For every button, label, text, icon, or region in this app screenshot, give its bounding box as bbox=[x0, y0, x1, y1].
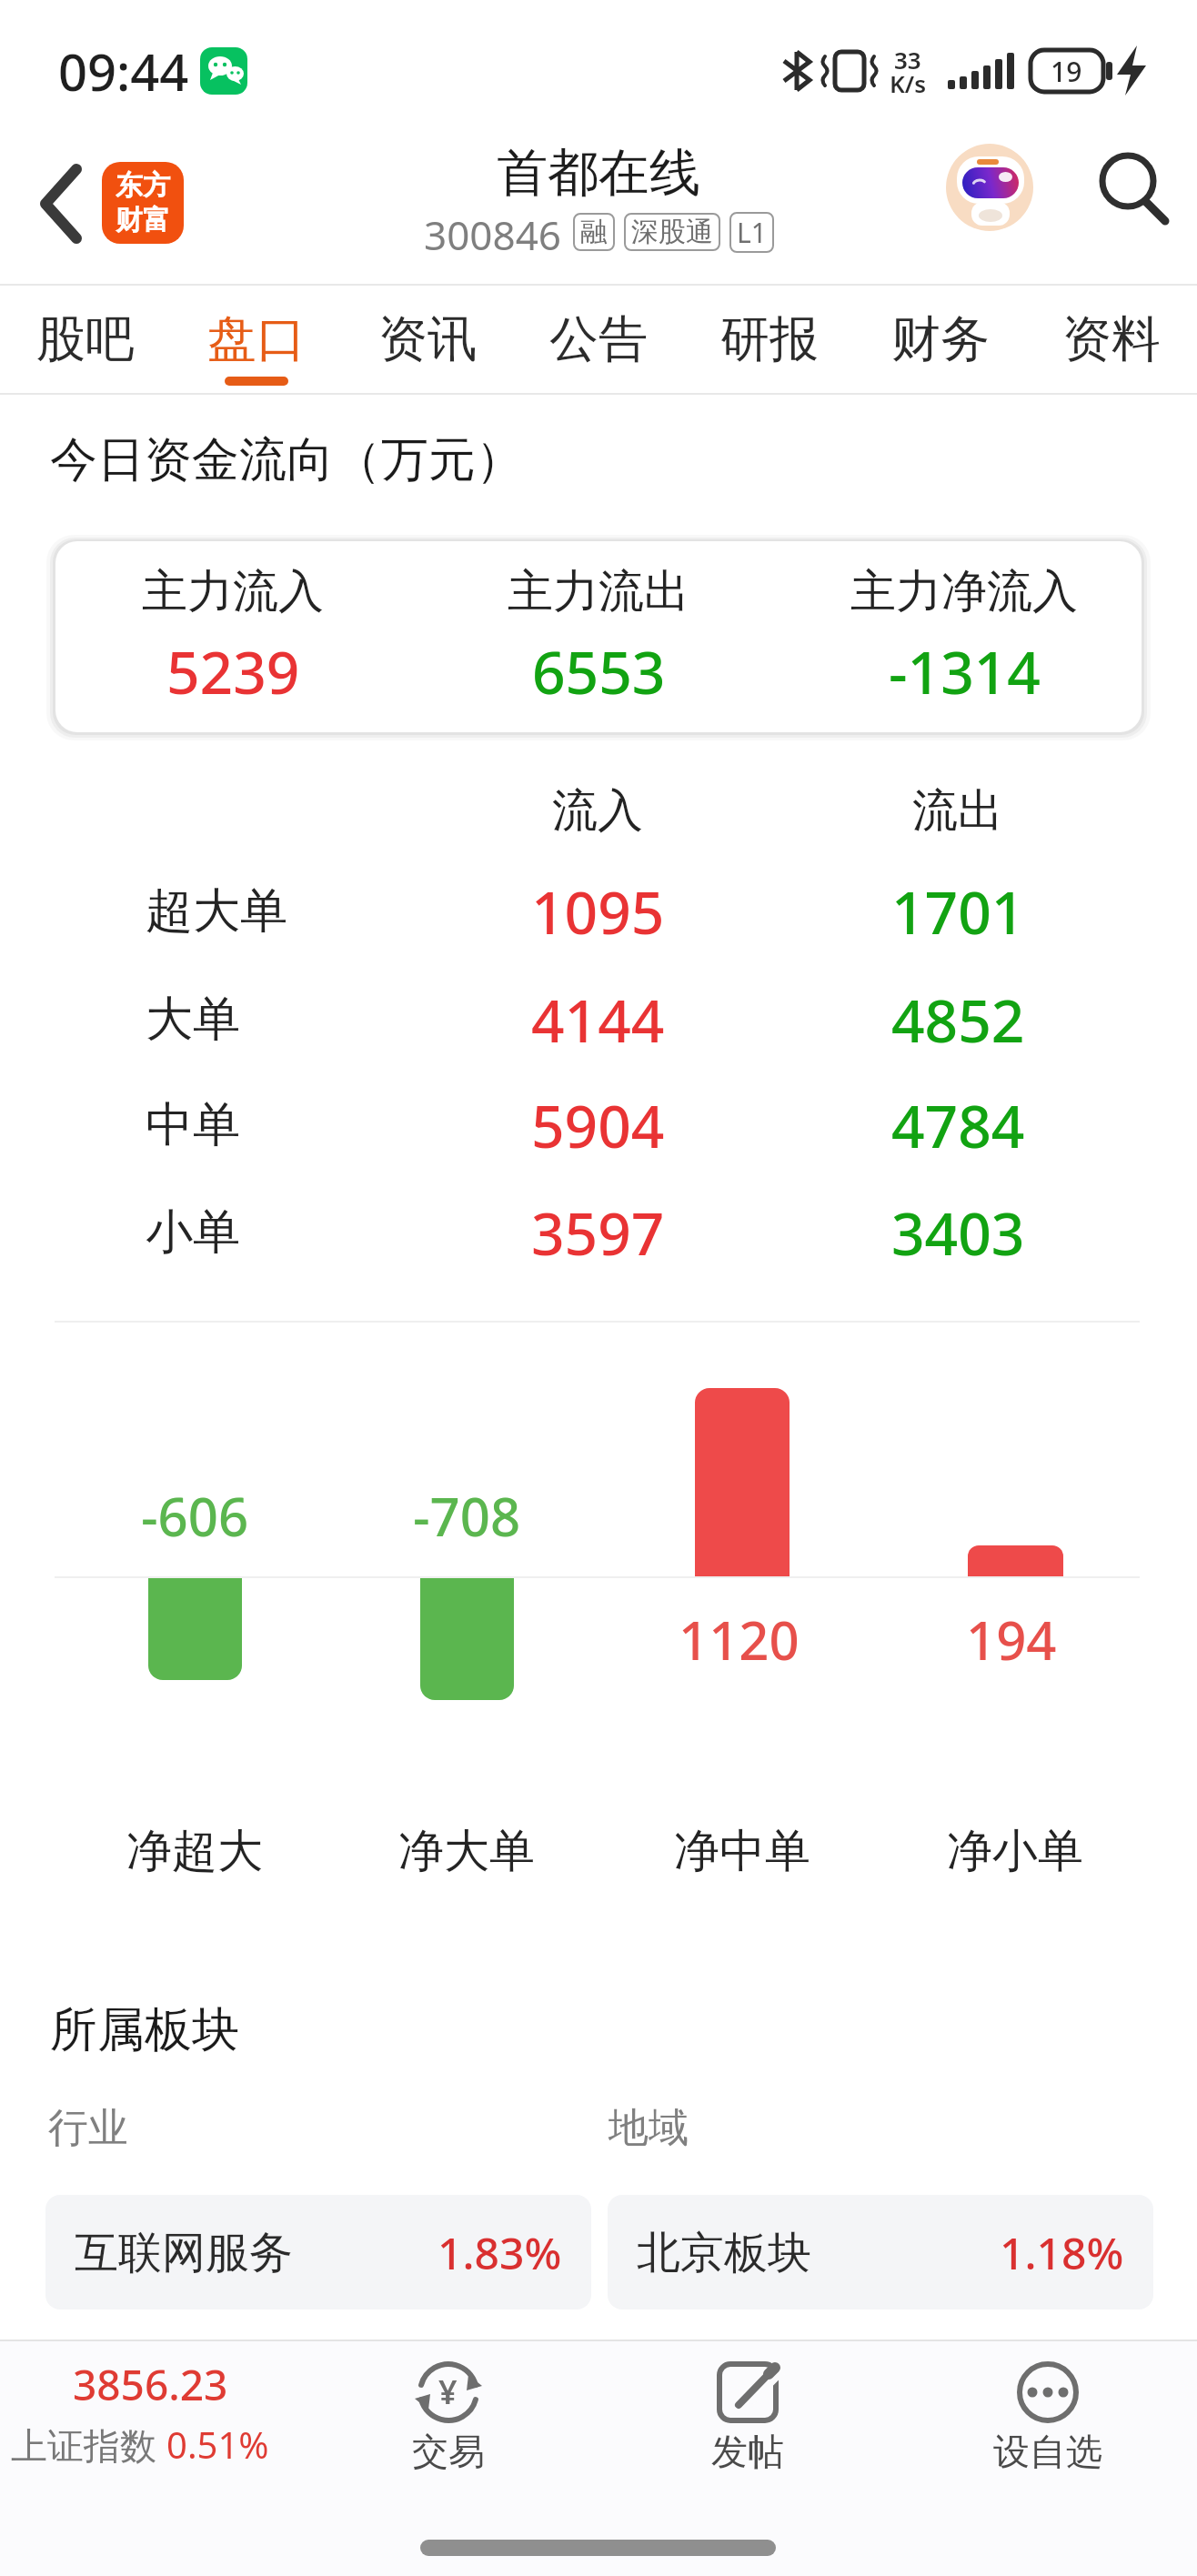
staticText: 资料 bbox=[1062, 308, 1161, 370]
staticText: 1701 bbox=[891, 872, 1025, 951]
staticText: 5904 bbox=[531, 1086, 665, 1165]
staticText: 4784 bbox=[891, 1086, 1025, 1165]
staticText: 1.83% bbox=[438, 2223, 562, 2282]
staticText: 公告 bbox=[549, 308, 648, 370]
staticText: 今日资金流向（万元） bbox=[50, 430, 523, 490]
staticText: L1 bbox=[737, 214, 767, 251]
staticText: 东方 bbox=[116, 168, 170, 203]
staticText: 设自选 bbox=[993, 2429, 1102, 2474]
staticText: 3597 bbox=[531, 1193, 665, 1273]
staticText: 19 bbox=[1051, 53, 1082, 90]
staticText: 3856.23 bbox=[73, 2356, 228, 2413]
staticText: 资讯 bbox=[378, 308, 477, 370]
staticText: 净小单 bbox=[947, 1823, 1083, 1880]
button[interactable] bbox=[666, 2351, 830, 2479]
staticText: 5239 bbox=[166, 632, 300, 711]
staticText: ¥ bbox=[438, 2370, 458, 2414]
staticText: 净大单 bbox=[398, 1823, 535, 1880]
staticText: 4144 bbox=[531, 981, 665, 1060]
staticText: 流入 bbox=[552, 782, 643, 840]
button[interactable]: 公告 bbox=[513, 286, 684, 393]
staticText: 交易 bbox=[412, 2429, 485, 2474]
staticText: 财务 bbox=[891, 308, 990, 370]
staticText: 盘口 bbox=[207, 308, 306, 370]
button[interactable]: 资讯 bbox=[342, 286, 513, 393]
button[interactable] bbox=[27, 155, 100, 255]
staticText: 行业 bbox=[48, 2103, 128, 2153]
staticText: 6553 bbox=[532, 632, 666, 711]
staticText: 4852 bbox=[891, 981, 1025, 1060]
staticText: 所属板块 bbox=[50, 2000, 239, 2060]
staticText: 0.51% bbox=[166, 2420, 269, 2469]
staticText: 1.18% bbox=[1000, 2223, 1124, 2282]
staticText: -708 bbox=[413, 1480, 521, 1552]
staticText: 1120 bbox=[679, 1604, 800, 1675]
button[interactable] bbox=[367, 2351, 530, 2479]
staticText: 194 bbox=[966, 1604, 1057, 1675]
button[interactable]: 股吧 bbox=[0, 286, 171, 393]
staticText: 互联网服务 bbox=[75, 2226, 293, 2280]
staticText: 净超大 bbox=[126, 1823, 263, 1880]
button[interactable]: 财务 bbox=[855, 286, 1026, 393]
button[interactable]: 互联网服务 bbox=[45, 2195, 591, 2309]
staticText: 北京板块 bbox=[637, 2226, 811, 2280]
button[interactable]: 资料 bbox=[1026, 286, 1197, 393]
button[interactable]: 盘口 bbox=[171, 286, 342, 393]
staticText: 主力流入 bbox=[142, 563, 324, 620]
staticText: 地域 bbox=[609, 2103, 689, 2153]
staticText: 财富 bbox=[116, 203, 170, 237]
staticText: 1095 bbox=[531, 872, 665, 951]
button[interactable] bbox=[0, 2347, 300, 2483]
staticText: 净中单 bbox=[674, 1823, 810, 1880]
staticText: 中单 bbox=[146, 1095, 240, 1155]
staticText: 大单 bbox=[146, 990, 240, 1050]
staticText: 股吧 bbox=[36, 308, 135, 370]
staticText: 深股通 bbox=[631, 215, 713, 249]
staticText: 主力净流入 bbox=[850, 563, 1078, 620]
staticText: 发帖 bbox=[711, 2429, 784, 2474]
button[interactable] bbox=[966, 2351, 1130, 2479]
staticText: 超大单 bbox=[146, 881, 287, 941]
staticText: 33 bbox=[894, 44, 921, 75]
button[interactable]: 东方 bbox=[102, 162, 184, 244]
staticText: 融 bbox=[580, 215, 608, 249]
staticText: 上证指数 bbox=[11, 2420, 166, 2469]
staticText: -1314 bbox=[889, 632, 1041, 711]
button[interactable] bbox=[946, 144, 1033, 231]
staticText: 小单 bbox=[146, 1202, 240, 1263]
staticText: 3403 bbox=[891, 1193, 1025, 1273]
staticText: 300846 bbox=[424, 207, 562, 257]
staticText: -606 bbox=[141, 1480, 249, 1552]
staticText: K/s bbox=[890, 67, 927, 99]
staticText: 流出 bbox=[912, 782, 1003, 840]
staticText: 研报 bbox=[720, 308, 819, 370]
staticText: 首都在线 bbox=[497, 141, 700, 206]
button[interactable]: 北京板块 bbox=[608, 2195, 1153, 2309]
staticText: 09:44 bbox=[58, 36, 189, 106]
button[interactable]: 研报 bbox=[684, 286, 855, 393]
staticText: 主力流出 bbox=[508, 563, 689, 620]
